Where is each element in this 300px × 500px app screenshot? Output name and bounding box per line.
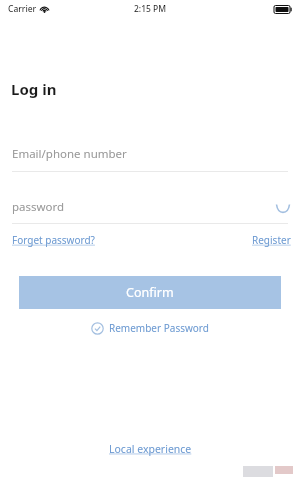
staticText: Email/phone number bbox=[12, 146, 127, 162]
button[interactable]: Email/phone number bbox=[0, 139, 300, 172]
staticText: Confirm bbox=[126, 284, 174, 301]
staticText: 2:15 PM bbox=[134, 3, 167, 15]
staticText: Carrier bbox=[8, 3, 37, 15]
staticText: Local experience bbox=[109, 442, 192, 456]
button[interactable]: Forget password? bbox=[8, 231, 99, 249]
staticText: password bbox=[12, 199, 65, 215]
button[interactable]: Show password bbox=[270, 196, 296, 220]
staticText: Log in bbox=[11, 79, 57, 99]
button[interactable]: Local experience bbox=[105, 440, 196, 458]
button[interactable]: Register bbox=[246, 231, 296, 249]
staticText: Remember Password bbox=[109, 321, 209, 335]
staticText: Forget password? bbox=[12, 233, 95, 247]
staticText: Register bbox=[252, 233, 291, 247]
button[interactable]: Remember Password bbox=[0, 318, 300, 338]
button[interactable]: password bbox=[0, 192, 300, 223]
button[interactable]: Confirm bbox=[19, 276, 281, 309]
